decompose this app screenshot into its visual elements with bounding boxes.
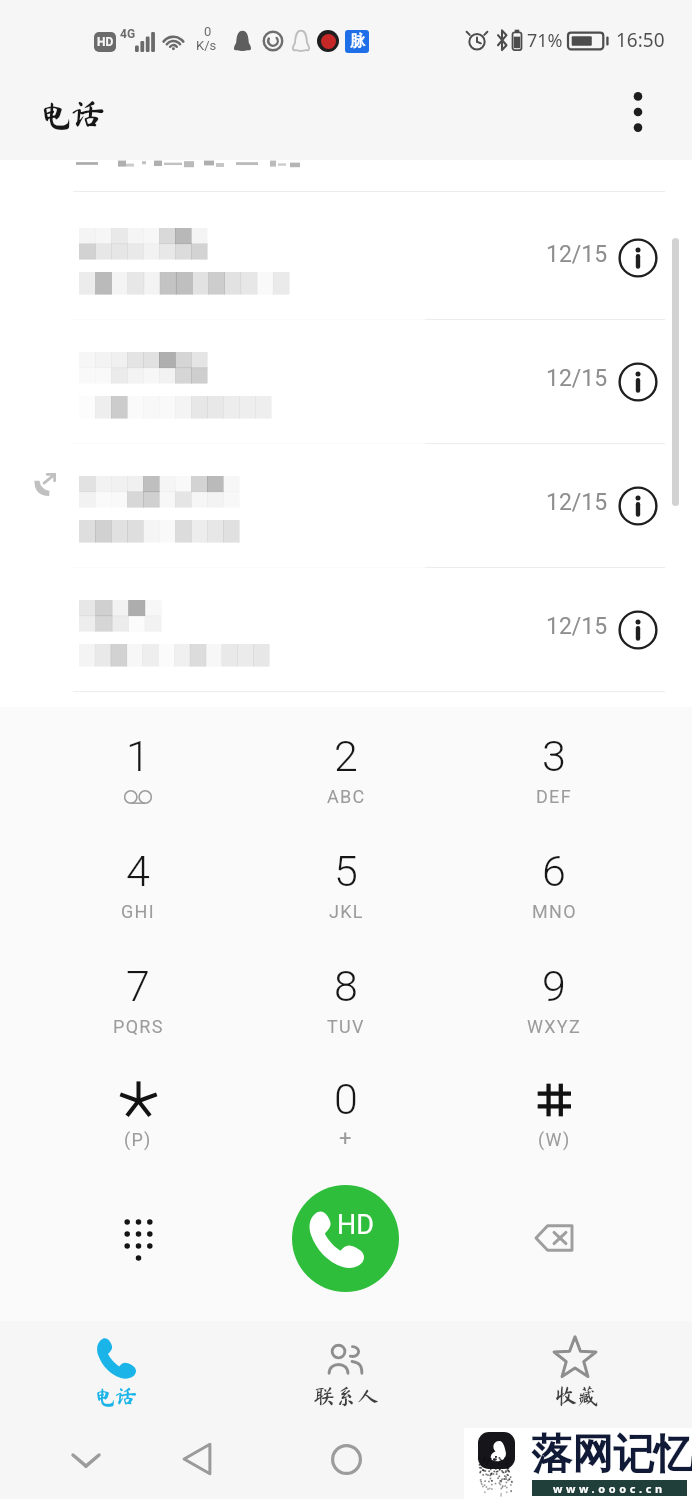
- staticText: PQRS: [113, 1016, 164, 1037]
- staticText: 脉: [350, 32, 365, 51]
- button[interactable]: 5: [276, 834, 416, 938]
- staticText: 5: [334, 846, 358, 896]
- button[interactable]: Call details: [616, 484, 660, 528]
- button[interactable]: 1: [68, 719, 208, 823]
- button[interactable]: Hide keyboard: [46, 1421, 126, 1499]
- staticText: 收藏: [555, 1385, 600, 1407]
- staticText: 0: [334, 1074, 358, 1124]
- button[interactable]: 12/15: [0, 196, 692, 320]
- button[interactable]: 2: [276, 719, 416, 823]
- button[interactable]: Back: [157, 1421, 237, 1497]
- button[interactable]: (W): [484, 1062, 624, 1166]
- button[interactable]: 8: [276, 949, 416, 1053]
- staticText: GHI: [121, 901, 155, 922]
- staticText: 7: [126, 961, 150, 1011]
- button[interactable]: More options: [612, 86, 664, 138]
- button[interactable]: (P): [68, 1062, 208, 1166]
- button[interactable]: 电话: [0, 1321, 231, 1421]
- button[interactable]: 9: [484, 949, 624, 1053]
- staticText: 12/15: [546, 365, 608, 392]
- staticText: 6: [542, 846, 566, 896]
- button[interactable]: Call details: [616, 236, 660, 280]
- staticText: 2: [334, 731, 358, 781]
- staticText: 12/15: [546, 613, 608, 640]
- button[interactable]: 联系人: [231, 1321, 462, 1421]
- staticText: 71%: [527, 28, 563, 53]
- button[interactable]: Call details: [616, 608, 660, 652]
- staticText: 1: [126, 731, 150, 781]
- staticText: WXYZ: [527, 1016, 582, 1037]
- staticText: DEF: [536, 786, 572, 807]
- staticText: 4G: [120, 27, 136, 41]
- staticText: 4: [126, 846, 150, 896]
- button[interactable]: 3: [484, 719, 624, 823]
- staticText: (W): [538, 1129, 571, 1150]
- button[interactable]: 12/15: [0, 444, 692, 568]
- staticText: 0: [204, 24, 212, 39]
- staticText: HD: [337, 1209, 374, 1241]
- staticText: 12/15: [546, 241, 608, 268]
- button[interactable]: 12/15: [0, 320, 692, 444]
- staticText: 8: [334, 961, 358, 1011]
- staticText: 12/15: [546, 489, 608, 516]
- staticText: 联系人: [313, 1385, 380, 1407]
- button[interactable]: 7: [68, 949, 208, 1053]
- staticText: 16:50: [616, 27, 665, 53]
- button[interactable]: 4: [68, 834, 208, 938]
- staticText: +: [339, 1126, 353, 1152]
- button[interactable]: Home: [306, 1421, 386, 1497]
- button[interactable]: 0: [276, 1062, 416, 1166]
- staticText: ABC: [327, 786, 366, 807]
- button[interactable]: 收藏: [462, 1321, 692, 1421]
- staticText: 落网记忆: [531, 1429, 692, 1481]
- staticText: TUV: [327, 1016, 365, 1037]
- button[interactable]: Call details: [616, 360, 660, 404]
- staticText: (P): [124, 1129, 152, 1150]
- staticText: www.oooc.cn: [553, 1481, 666, 1496]
- staticText: 3: [542, 731, 566, 781]
- button[interactable]: Keypad: [98, 1198, 178, 1278]
- button[interactable]: Backspace: [514, 1198, 594, 1278]
- staticText: 9: [542, 961, 566, 1011]
- staticText: K/s: [196, 38, 217, 53]
- button[interactable]: 6: [484, 834, 624, 938]
- staticText: HD: [97, 35, 114, 49]
- staticText: MNO: [532, 901, 577, 922]
- staticText: JKL: [329, 901, 364, 922]
- button[interactable]: 12/15: [0, 568, 692, 692]
- staticText: 电话: [93, 1385, 138, 1407]
- button[interactable]: Call: [292, 1185, 399, 1292]
- staticText: 电话: [37, 96, 105, 130]
